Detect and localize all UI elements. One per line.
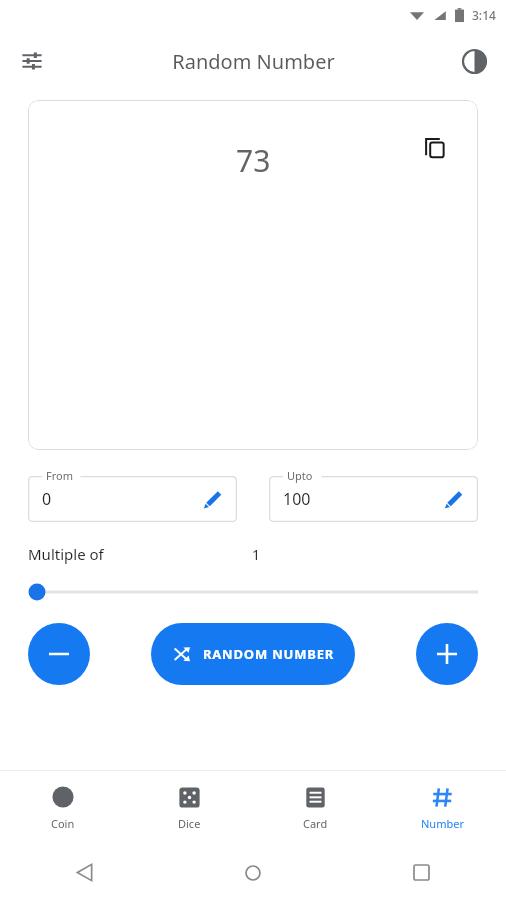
button[interactable]: Back (0, 845, 168, 900)
staticText: Multiple of (28, 544, 104, 564)
button[interactable]: RANDOM NUMBER (151, 623, 355, 685)
button[interactable]: Number (379, 771, 506, 845)
staticText: From (46, 468, 73, 483)
button[interactable]: Home (168, 845, 337, 900)
button[interactable]: Toggle theme (452, 39, 496, 83)
button[interactable] (28, 582, 478, 602)
staticText: 73 (236, 140, 271, 181)
button[interactable]: 0 (28, 476, 237, 522)
button[interactable]: Edit Upto (440, 486, 466, 512)
staticText: Number (421, 816, 464, 831)
staticText: 1 (252, 545, 261, 564)
staticText: 3:14 (472, 7, 496, 23)
button[interactable]: Copy (420, 133, 450, 163)
staticText: Dice (178, 816, 201, 831)
staticText: Coin (51, 816, 75, 831)
staticText: Random Number (172, 48, 335, 75)
button[interactable]: Settings (8, 37, 56, 85)
staticText: 100 (283, 488, 311, 510)
button[interactable]: Coin (0, 771, 126, 845)
staticText: RANDOM NUMBER (203, 645, 335, 663)
button[interactable]: Edit From (199, 486, 225, 512)
staticText: Upto (287, 468, 313, 483)
staticText: Card (303, 816, 328, 831)
button[interactable]: Decrease (28, 623, 90, 685)
button[interactable]: Card (252, 771, 379, 845)
button[interactable]: 100 (269, 476, 478, 522)
button[interactable]: 73 (28, 100, 478, 450)
staticText: 0 (42, 488, 52, 510)
button[interactable]: Recent apps (337, 845, 506, 900)
button[interactable]: Dice (126, 771, 252, 845)
button[interactable]: Increase (416, 623, 478, 685)
